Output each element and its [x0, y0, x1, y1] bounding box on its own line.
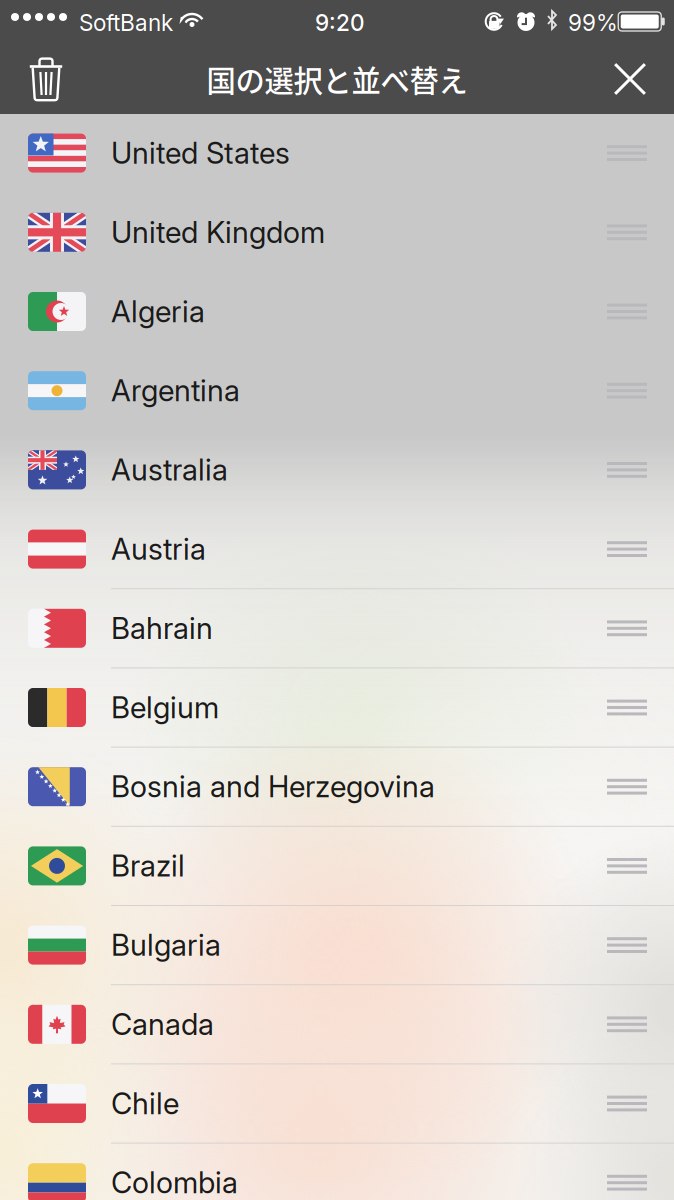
staticText: Bulgaria [111, 927, 221, 963]
staticText: Canada [111, 1007, 214, 1042]
staticText: Algeria [111, 294, 205, 329]
staticText: Australia [111, 452, 228, 488]
staticText: Belgium [111, 690, 219, 725]
button[interactable]: Austria [0, 510, 674, 589]
staticText: 99% [568, 9, 618, 36]
staticText: Bosnia and Herzegovina [111, 769, 435, 804]
button[interactable]: Belgium [0, 668, 674, 748]
staticText: Austria [111, 531, 206, 567]
staticText: Bahrain [111, 611, 213, 646]
button[interactable]: Bosnia and Herzegovina [0, 748, 674, 827]
button[interactable]: Delete [0, 44, 92, 114]
button[interactable]: United States [0, 114, 674, 193]
button[interactable]: Algeria [0, 272, 674, 352]
button[interactable]: Bahrain [0, 589, 674, 668]
staticText: SoftBank [79, 9, 173, 36]
button[interactable]: Close [586, 44, 674, 114]
staticText: United States [111, 135, 290, 171]
button[interactable]: Australia [0, 431, 674, 510]
staticText: Argentina [111, 373, 240, 408]
button[interactable]: Brazil [0, 827, 674, 906]
button[interactable]: Argentina [0, 352, 674, 431]
staticText: 国の選択と並べ替え [206, 58, 467, 100]
staticText: 9:20 [315, 9, 365, 36]
button[interactable]: Canada [0, 985, 674, 1064]
button[interactable]: Bulgaria [0, 906, 674, 985]
staticText: Colombia [111, 1165, 238, 1200]
button[interactable]: United Kingdom [0, 193, 674, 272]
staticText: Chile [111, 1086, 179, 1121]
button[interactable]: Chile [0, 1064, 674, 1144]
staticText: Brazil [111, 848, 185, 884]
button[interactable]: Colombia [0, 1144, 674, 1200]
staticText: United Kingdom [111, 215, 325, 250]
